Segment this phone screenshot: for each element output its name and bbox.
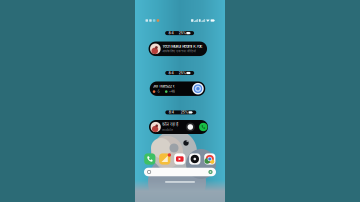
- staticText: Tech Mukul Redmi K70E: [162, 44, 202, 49]
- staticText: mobile: [162, 128, 173, 132]
- staticText: 25%: [181, 110, 188, 114]
- staticText: 8:4: [169, 110, 174, 114]
- staticText: -5: [157, 90, 160, 93]
- button[interactable]: Chrome: [204, 153, 215, 165]
- staticText: +46: [169, 90, 175, 93]
- staticText: 25%: [179, 71, 186, 75]
- staticText: कॉल रहा है: [162, 122, 178, 127]
- button[interactable]: Tech Mukul Redmi K70E: [149, 41, 207, 56]
- staticText: 8:4: [168, 31, 173, 35]
- staticText: Jio TrueS22 ₹: [153, 84, 175, 88]
- button[interactable]: Files: [159, 153, 170, 165]
- staticText: 8:4: [169, 71, 174, 75]
- staticText: 25%: [179, 31, 186, 35]
- button[interactable]: Phone: [144, 153, 155, 165]
- staticText: आपके लिए एक नया वीडियो: [162, 49, 196, 53]
- button[interactable]: Jio TrueS22 ₹: [150, 81, 205, 96]
- button[interactable]: Camera: [189, 153, 200, 165]
- button[interactable]: कॉल रहा है: [149, 120, 208, 134]
- button[interactable]: Decline call: [186, 123, 195, 131]
- button[interactable]: Answer call: [199, 123, 207, 131]
- button[interactable]: Search: [144, 168, 216, 176]
- button[interactable]: YouTube: [174, 153, 185, 165]
